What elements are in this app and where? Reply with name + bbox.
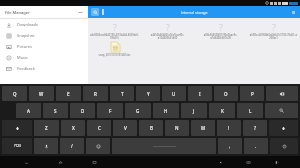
button[interactable]: Downloads xyxy=(0,19,88,30)
staticText: L xyxy=(249,108,252,114)
staticText: File Manager xyxy=(5,10,30,15)
staticText: . xyxy=(255,143,257,149)
button[interactable]: Q xyxy=(2,86,27,101)
staticText: U xyxy=(172,91,176,97)
button[interactable]: B xyxy=(139,120,163,136)
button[interactable]: Voice input xyxy=(34,138,58,154)
staticText: W xyxy=(39,91,44,97)
staticText: ? xyxy=(113,21,117,32)
button[interactable]: Recents xyxy=(88,156,100,168)
button[interactable]: More options xyxy=(290,9,297,16)
button[interactable]: Pictures xyxy=(0,41,88,52)
button[interactable]: G xyxy=(125,103,151,118)
staticText: O xyxy=(224,91,228,97)
button[interactable]: File Manager xyxy=(0,6,88,18)
button[interactable]: / xyxy=(60,138,84,154)
staticText: B xyxy=(150,125,153,131)
button[interactable]: Snapshot xyxy=(0,30,88,41)
button[interactable]: snap_20131010181405.txt xyxy=(88,40,141,58)
staticText: D xyxy=(81,108,85,114)
staticText: a4c0006aca9440190-47f2b444-4609dc0-59647… xyxy=(90,33,139,39)
button[interactable]: Back xyxy=(20,156,32,168)
button[interactable]: Feedback xyxy=(0,63,88,74)
staticText: Y xyxy=(147,91,150,97)
button[interactable]: Search xyxy=(91,8,99,16)
button[interactable]: F xyxy=(97,103,123,118)
button[interactable]: Switch input method xyxy=(242,156,254,168)
staticText: T xyxy=(121,91,124,97)
staticText: ? xyxy=(272,21,276,32)
staticText: ? xyxy=(166,21,170,32)
staticText: G xyxy=(136,108,140,114)
staticText: H xyxy=(164,108,168,114)
staticText: R xyxy=(94,91,97,97)
staticText: V xyxy=(124,125,127,131)
staticText: , xyxy=(229,143,231,149)
button[interactable]: C xyxy=(87,120,111,136)
button[interactable]: S xyxy=(43,103,68,118)
button[interactable]: ? xyxy=(243,120,267,136)
button[interactable]: I xyxy=(188,86,212,101)
staticText: ?123 xyxy=(14,144,21,148)
button[interactable]: Enter xyxy=(270,138,298,154)
button[interactable]: N xyxy=(165,120,189,136)
button[interactable]: Home xyxy=(54,156,66,168)
button[interactable]: ? xyxy=(88,20,141,40)
staticText: / xyxy=(71,143,73,149)
button[interactable]: Emoji xyxy=(86,138,110,154)
button[interactable]: A xyxy=(16,103,41,118)
button[interactable]: D xyxy=(70,103,95,118)
button[interactable]: Shift xyxy=(2,120,32,136)
button[interactable]: J xyxy=(181,103,207,118)
button[interactable]: U xyxy=(162,86,186,101)
button[interactable]: Shift right xyxy=(269,120,298,136)
button[interactable]: Volume xyxy=(270,156,282,168)
staticText: E xyxy=(67,91,70,97)
button[interactable]: X xyxy=(61,120,85,136)
button[interactable]: ? xyxy=(141,20,194,40)
button[interactable]: . xyxy=(244,138,268,154)
staticText: A xyxy=(27,108,30,114)
button[interactable]: W xyxy=(29,86,54,101)
button[interactable]: M xyxy=(191,120,215,136)
button[interactable]: , xyxy=(218,138,242,154)
button[interactable]: Backspace xyxy=(266,86,298,101)
button[interactable]: Search xyxy=(265,103,298,118)
staticText: a83b604500f051f0a2bae9c-a7d6400c681b00 xyxy=(196,33,245,39)
staticText: P xyxy=(251,91,254,97)
staticText: S xyxy=(54,108,57,114)
staticText: Z xyxy=(45,125,48,131)
button[interactable]: Music xyxy=(0,52,88,63)
staticText: Feedback xyxy=(17,66,35,71)
button[interactable]: R xyxy=(83,86,108,101)
staticText: Snapshot xyxy=(17,33,35,38)
button[interactable]: E xyxy=(56,86,81,101)
button[interactable]: H xyxy=(153,103,179,118)
staticText: ? xyxy=(219,21,223,32)
button[interactable]: K xyxy=(209,103,235,118)
button[interactable]: V xyxy=(113,120,137,136)
staticText: Music xyxy=(17,55,28,60)
button[interactable]: Hide keyboard xyxy=(214,156,226,168)
staticText: Internal storage xyxy=(181,10,208,15)
button[interactable]: ?123 xyxy=(2,138,32,154)
staticText: Downloads xyxy=(17,22,38,27)
staticText: ! xyxy=(228,125,230,131)
button[interactable]: T xyxy=(110,86,134,101)
button[interactable]: O xyxy=(214,86,238,101)
staticText: N xyxy=(175,125,179,131)
staticText: Pictures xyxy=(17,44,33,49)
button[interactable]: P xyxy=(240,86,264,101)
staticText: snap_20131010181405.txt xyxy=(90,53,139,57)
staticText: ? xyxy=(254,125,257,131)
staticText: C xyxy=(98,125,101,131)
button[interactable]: Z xyxy=(34,120,59,136)
button[interactable]: ? xyxy=(194,20,247,40)
button[interactable]: ? xyxy=(247,20,300,40)
button[interactable]: ! xyxy=(217,120,241,136)
staticText: X xyxy=(72,125,75,131)
button[interactable]: Space xyxy=(112,138,216,154)
button[interactable]: Y xyxy=(136,86,160,101)
staticText: Q xyxy=(13,91,17,97)
button[interactable]: L xyxy=(237,103,263,118)
